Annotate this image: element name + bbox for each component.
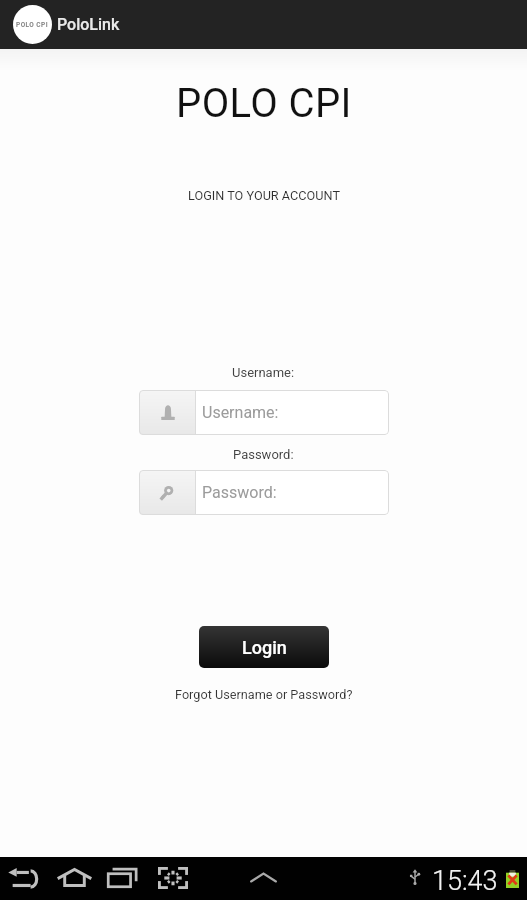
- button[interactable]: Forgot Username or Password?: [171, 684, 357, 705]
- button[interactable]: Back: [8, 867, 37, 888]
- staticText: PoloLink: [57, 15, 120, 34]
- staticText: Username:: [202, 403, 279, 422]
- staticText: Password:: [202, 483, 277, 502]
- button[interactable]: Screenshot: [158, 867, 188, 889]
- staticText: Password:: [233, 447, 294, 462]
- staticText: Username:: [232, 365, 295, 380]
- button[interactable]: Password:: [139, 470, 389, 515]
- staticText: POLO CPI: [16, 21, 49, 29]
- button[interactable]: Home: [57, 868, 92, 887]
- staticText: POLO CPI: [176, 80, 352, 127]
- staticText: Login: [242, 637, 287, 658]
- staticText: 15:43: [432, 865, 498, 897]
- button[interactable]: Username:: [139, 390, 389, 435]
- button[interactable]: Login: [199, 626, 329, 668]
- staticText: LOGIN TO YOUR ACCOUNT: [188, 188, 340, 203]
- button[interactable]: Polo CPI logo: [13, 5, 52, 44]
- button[interactable]: Show navigation: [250, 872, 277, 883]
- button[interactable]: Recent apps: [107, 867, 138, 888]
